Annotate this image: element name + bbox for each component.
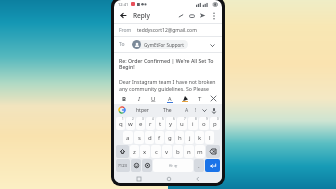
button[interactable]: Back — [193, 174, 202, 183]
button[interactable]: Highlight — [179, 93, 190, 104]
staticText: z — [133, 148, 136, 156]
staticText: x — [143, 148, 147, 156]
staticText: The — [163, 107, 172, 114]
staticText: To — [119, 41, 125, 48]
button[interactable]: More options — [208, 10, 219, 21]
button[interactable]: The — [155, 105, 180, 116]
button[interactable]: Text color — [164, 93, 175, 104]
staticText: c — [155, 148, 158, 156]
button[interactable]: u — [177, 117, 187, 130]
staticText: 2 — [132, 117, 134, 121]
button[interactable]: v — [162, 145, 172, 158]
button[interactable]: Google search — [118, 106, 126, 114]
button[interactable]: p — [210, 117, 220, 130]
button[interactable]: htper — [130, 105, 155, 116]
button[interactable]: b — [173, 145, 183, 158]
button[interactable]: B — [118, 93, 129, 104]
staticText: u — [180, 120, 184, 128]
button[interactable]: l — [205, 131, 214, 144]
staticText: f — [158, 134, 161, 142]
staticText: b — [176, 148, 180, 156]
staticText: 3 — [142, 117, 144, 121]
staticText: o — [202, 120, 206, 128]
button[interactable]: Emoji — [131, 159, 141, 172]
staticText: Dear Instagram team I have not broken an… — [119, 78, 217, 92]
staticText: Re: Order Confirmed | We're All Set To B… — [119, 57, 217, 71]
button[interactable]: A — [182, 106, 191, 115]
button[interactable]: Period — [194, 159, 204, 172]
staticText: 0 — [217, 117, 219, 121]
staticText: i — [192, 120, 194, 128]
button[interactable]: Emoji — [191, 106, 200, 115]
button[interactable]: Voice input — [209, 106, 218, 115]
button[interactable]: Send — [197, 10, 208, 21]
button[interactable]: Back — [117, 9, 130, 22]
button[interactable]: j — [185, 131, 194, 144]
staticText: ?123 — [118, 163, 128, 169]
staticText: m — [197, 148, 203, 156]
button[interactable]: T — [194, 93, 205, 104]
staticText: 9 — [206, 117, 208, 121]
staticText: 12:41 — [118, 2, 129, 7]
staticText: A — [185, 107, 189, 114]
button[interactable]: a — [123, 131, 133, 144]
button[interactable]: Enter — [205, 159, 220, 172]
button[interactable]: e — [136, 117, 145, 130]
button[interactable]: f — [155, 131, 164, 144]
button[interactable]: Reply — [133, 11, 151, 20]
button[interactable]: More — [200, 106, 209, 115]
staticText: s — [138, 134, 141, 142]
button[interactable]: Home — [164, 174, 173, 183]
staticText: k — [198, 134, 202, 142]
button[interactable]: i — [188, 117, 198, 130]
staticText: ! — [195, 107, 197, 114]
button[interactable]: d — [145, 131, 154, 144]
button[interactable]: t — [156, 117, 165, 130]
staticText: 7 — [184, 117, 186, 121]
staticText: l — [209, 134, 211, 142]
button[interactable]: From — [119, 24, 217, 36]
button[interactable]: q — [116, 117, 125, 130]
button[interactable]: h — [175, 131, 184, 144]
button[interactable]: o — [199, 117, 209, 130]
staticText: htper — [136, 107, 149, 114]
button[interactable]: m — [195, 145, 205, 158]
button[interactable]: Settings — [142, 159, 152, 172]
button[interactable]: Attach file — [186, 10, 197, 21]
button[interactable]: r — [146, 117, 155, 130]
staticText: t — [159, 120, 162, 128]
button[interactable]: To — [119, 37, 217, 52]
staticText: ਹਿੰ ਗੁ — [169, 163, 178, 168]
button[interactable]: Backspace — [206, 145, 220, 158]
button[interactable]: x — [140, 145, 150, 158]
staticText: h — [178, 134, 182, 142]
staticText: a — [126, 134, 130, 142]
staticText: e — [139, 120, 143, 128]
button[interactable]: Symbols — [116, 159, 130, 172]
staticText: n — [187, 148, 191, 156]
button[interactable]: g — [165, 131, 174, 144]
staticText: v — [165, 148, 169, 156]
staticText: r — [149, 120, 152, 128]
staticText: 5 — [162, 117, 164, 121]
button[interactable]: w — [126, 117, 135, 130]
staticText: GymEtFor Support — [144, 42, 184, 48]
button[interactable]: ਹਿੰ ਗੁ — [153, 159, 193, 172]
button[interactable]: c — [151, 145, 161, 158]
staticText: p — [213, 120, 217, 128]
button[interactable]: Recents — [134, 174, 143, 183]
button[interactable]: Attach — [175, 10, 186, 21]
button[interactable]: Shift — [116, 145, 129, 158]
button[interactable]: n — [184, 145, 194, 158]
button[interactable]: k — [195, 131, 204, 144]
staticText: g — [168, 134, 172, 142]
button[interactable]: z — [130, 145, 139, 158]
button[interactable]: s — [134, 131, 144, 144]
button[interactable]: Expand recipients — [207, 40, 217, 50]
button[interactable]: I — [133, 93, 144, 104]
staticText: teddyscort12@gmail.com — [137, 27, 197, 34]
button[interactable]: U — [148, 93, 159, 104]
button[interactable]: y — [166, 117, 176, 130]
staticText: 1 — [122, 117, 124, 121]
button[interactable]: Close formatting — [209, 94, 218, 103]
